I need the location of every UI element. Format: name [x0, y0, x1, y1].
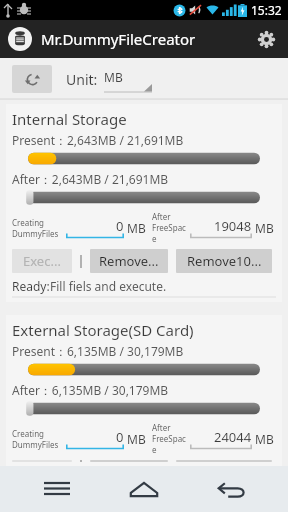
staticText: Creating — [12, 217, 45, 228]
button[interactable] — [7, 26, 33, 52]
button[interactable]: Settings — [251, 24, 281, 54]
staticText: Exec... — [23, 252, 61, 270]
staticText: 19048 — [214, 217, 252, 235]
staticText: Present：6,135MB / 30,179MB — [12, 343, 184, 359]
staticText: MB — [104, 69, 123, 85]
staticText: Unit: — [66, 70, 98, 89]
staticText: FreeSpace — [152, 433, 188, 455]
staticText: DummyFiles — [12, 228, 59, 239]
button[interactable]: 24044 — [190, 428, 252, 450]
button[interactable]: 19048 — [190, 217, 252, 239]
staticText: Ready: — [12, 278, 50, 294]
staticText: Creating — [12, 428, 45, 439]
staticText: Mr.DummyFileCreator — [41, 29, 196, 49]
staticText: After — [152, 422, 171, 433]
button[interactable]: Home — [114, 466, 174, 512]
staticText: 24044 — [214, 428, 252, 446]
staticText: Fill fiels and execute. — [50, 278, 167, 294]
button[interactable]: Back — [201, 466, 261, 512]
staticText: 0 — [116, 217, 124, 235]
button[interactable]: MB — [104, 65, 152, 93]
button[interactable]: Remove10... — [176, 249, 272, 273]
staticText: MB — [127, 220, 146, 236]
staticText: MB — [127, 431, 146, 447]
staticText: Present：2,643MB / 21,691MB — [12, 132, 184, 148]
staticText: MB — [255, 431, 274, 447]
staticText: After — [152, 211, 171, 222]
button[interactable]: 0 — [66, 217, 124, 239]
staticText: External Storage(SD Card) — [12, 320, 194, 340]
staticText: DummyFiles — [12, 439, 59, 450]
button[interactable]: 0 — [66, 428, 124, 450]
staticText: After：2,643MB / 21,691MB — [12, 171, 169, 187]
button[interactable]: Remove... — [90, 249, 168, 273]
button[interactable]: Exec... — [12, 249, 72, 273]
staticText: MB — [255, 220, 274, 236]
staticText: FreeSpace — [152, 222, 188, 244]
button[interactable]: Recent apps — [27, 466, 87, 512]
button[interactable]: Refresh — [12, 65, 52, 93]
staticText: Remove... — [99, 252, 159, 270]
staticText: 15:32 — [251, 2, 282, 18]
staticText: Internal Storage — [12, 109, 127, 129]
staticText: 0 — [116, 428, 124, 446]
staticText: Remove10... — [187, 252, 262, 270]
staticText: After：6,135MB / 30,179MB — [12, 382, 169, 398]
